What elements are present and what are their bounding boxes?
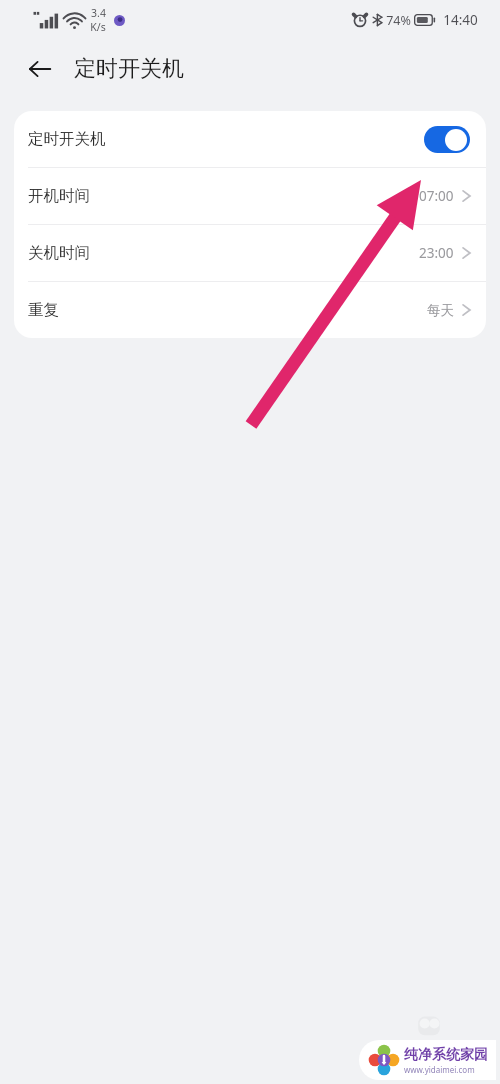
staticText: 定时开关机 [28, 129, 106, 149]
button[interactable]: 开机时间 [14, 168, 486, 224]
staticText: 3.4 [91, 6, 106, 20]
staticText: 07:00 [419, 187, 454, 205]
staticText: 重复 [28, 300, 59, 320]
staticText: 关机时间 [28, 243, 90, 263]
staticText: 23:00 [419, 244, 454, 262]
button[interactable]: 重复 [14, 282, 486, 338]
staticText: 14:40 [443, 11, 478, 29]
staticText: 定时开关机 [74, 55, 184, 83]
button[interactable]: 关机时间 [14, 225, 486, 281]
button[interactable]: Back [18, 47, 62, 91]
staticText: www.yidaimei.com [404, 1064, 475, 1075]
staticText: 开机时间 [28, 186, 90, 206]
staticText: 74% [386, 12, 411, 29]
staticText: 每天 [427, 302, 454, 319]
button[interactable]: Scheduled power toggle, on [424, 126, 470, 153]
staticText: 纯净系统家园 [404, 1046, 488, 1064]
staticText: K/s [90, 20, 106, 34]
button[interactable]: 定时开关机 [14, 111, 486, 167]
